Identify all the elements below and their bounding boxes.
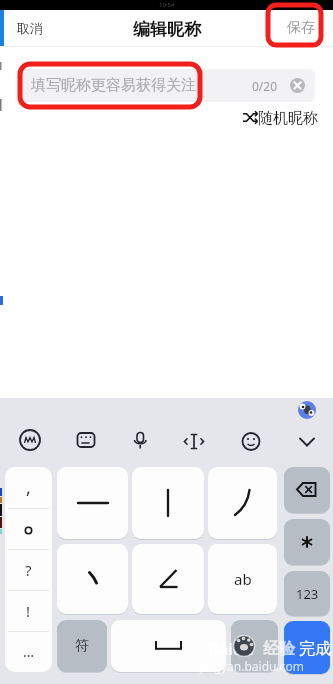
button[interactable]: 保存 <box>278 16 324 40</box>
staticText: , <box>26 475 31 500</box>
button[interactable] <box>284 621 330 674</box>
button[interactable] <box>132 544 204 614</box>
button[interactable] <box>57 467 128 539</box>
button[interactable]: ? <box>5 549 52 590</box>
staticText: 编辑昵称 <box>133 19 201 40</box>
staticText: 10:54 <box>159 1 175 9</box>
staticText: 保存 <box>287 19 315 37</box>
button[interactable]: … <box>5 631 52 672</box>
button[interactable]: 123 <box>284 571 330 616</box>
button[interactable]: ! <box>5 590 52 631</box>
button[interactable] <box>237 426 265 454</box>
staticText: Baidu <box>208 638 254 658</box>
button[interactable] <box>238 106 328 130</box>
button[interactable] <box>57 544 128 614</box>
button[interactable]: 取消 <box>8 16 52 40</box>
button[interactable] <box>132 467 204 539</box>
button[interactable] <box>284 467 330 513</box>
button[interactable] <box>284 519 330 565</box>
staticText: 0/20 <box>252 78 278 94</box>
staticText: 123 <box>296 585 319 603</box>
staticText: 取消 <box>17 20 43 36</box>
button[interactable] <box>16 426 44 454</box>
staticText: 随机昵称 <box>258 109 318 128</box>
staticText: ! <box>26 601 31 621</box>
staticText: ? <box>25 560 32 580</box>
button[interactable] <box>111 620 226 672</box>
staticText: jingyan.baidu.com <box>200 658 304 674</box>
button[interactable]: ab <box>208 544 277 614</box>
button[interactable] <box>293 426 321 454</box>
button[interactable] <box>180 426 208 454</box>
button[interactable] <box>72 426 100 454</box>
button[interactable] <box>20 69 315 102</box>
button[interactable]: , <box>5 467 52 508</box>
staticText: 完成 <box>299 639 331 659</box>
button[interactable]: 符 <box>57 620 107 672</box>
button[interactable] <box>5 508 52 549</box>
staticText: … <box>23 642 35 661</box>
staticText: 填写昵称更容易获得关注 <box>31 76 196 95</box>
staticText: 符 <box>75 637 89 655</box>
button[interactable] <box>231 620 278 672</box>
staticText: ab <box>234 569 252 589</box>
button[interactable] <box>126 426 154 454</box>
staticText: 经验 <box>263 639 295 659</box>
button[interactable] <box>208 467 277 539</box>
